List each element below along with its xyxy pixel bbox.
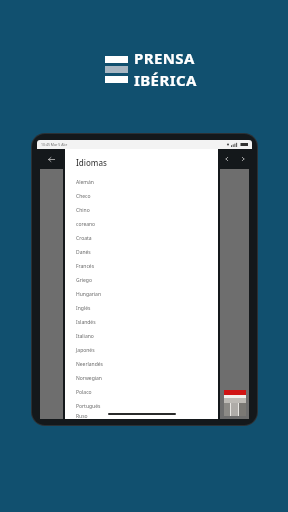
staticText: Checo [76, 193, 91, 200]
button[interactable]: coreano [76, 217, 218, 231]
staticText: Polaco [76, 389, 92, 396]
staticText: coreano [76, 221, 96, 228]
button[interactable]: Next [237, 153, 249, 165]
button[interactable]: Portada [224, 390, 246, 416]
staticText: 10:45 Mar 5 Abr [41, 142, 68, 147]
staticText: Idiomas [76, 157, 107, 168]
button[interactable]: Italiano [76, 329, 218, 343]
button[interactable]: Chino [76, 203, 218, 217]
staticText: Griego [76, 277, 92, 284]
staticText: Alemán [76, 179, 94, 186]
button[interactable]: Back [37, 149, 65, 169]
button[interactable]: Norwegian [76, 371, 218, 385]
staticText: Inglés [76, 305, 91, 312]
button[interactable]: Alemán [76, 175, 218, 189]
button[interactable]: Inglés [76, 301, 218, 315]
staticText: Portugués [76, 403, 101, 410]
staticText: Islandés [76, 319, 96, 326]
button[interactable]: Hungarian [76, 287, 218, 301]
staticText: Ruso [76, 413, 88, 419]
staticText: Croata [76, 235, 92, 242]
button[interactable]: Croata [76, 231, 218, 245]
staticText: Norwegian [76, 375, 102, 382]
staticText: Francés [76, 263, 95, 270]
staticText: Chino [76, 207, 90, 214]
button[interactable]: Portugués [76, 399, 218, 413]
button[interactable]: Islandés [76, 315, 218, 329]
staticText: Hungarian [76, 291, 102, 298]
button[interactable]: Griego [76, 273, 218, 287]
button[interactable]: Checo [76, 189, 218, 203]
button[interactable]: Danés [76, 245, 218, 259]
staticText: Danés [76, 249, 91, 256]
button[interactable]: Francés [76, 259, 218, 273]
button[interactable]: Japonés [76, 343, 218, 357]
staticText: Italiano [76, 333, 94, 340]
button[interactable]: Neerlandés [76, 357, 218, 371]
staticText: Japonés [76, 347, 95, 354]
staticText: Neerlandés [76, 361, 103, 368]
button[interactable]: Previous [221, 153, 233, 165]
button[interactable]: Ruso [76, 413, 218, 419]
staticText: IBÉRICA [134, 70, 197, 90]
button[interactable]: Polaco [76, 385, 218, 399]
staticText: PRENSA [134, 48, 195, 68]
button[interactable]: PRENSA [105, 48, 197, 90]
